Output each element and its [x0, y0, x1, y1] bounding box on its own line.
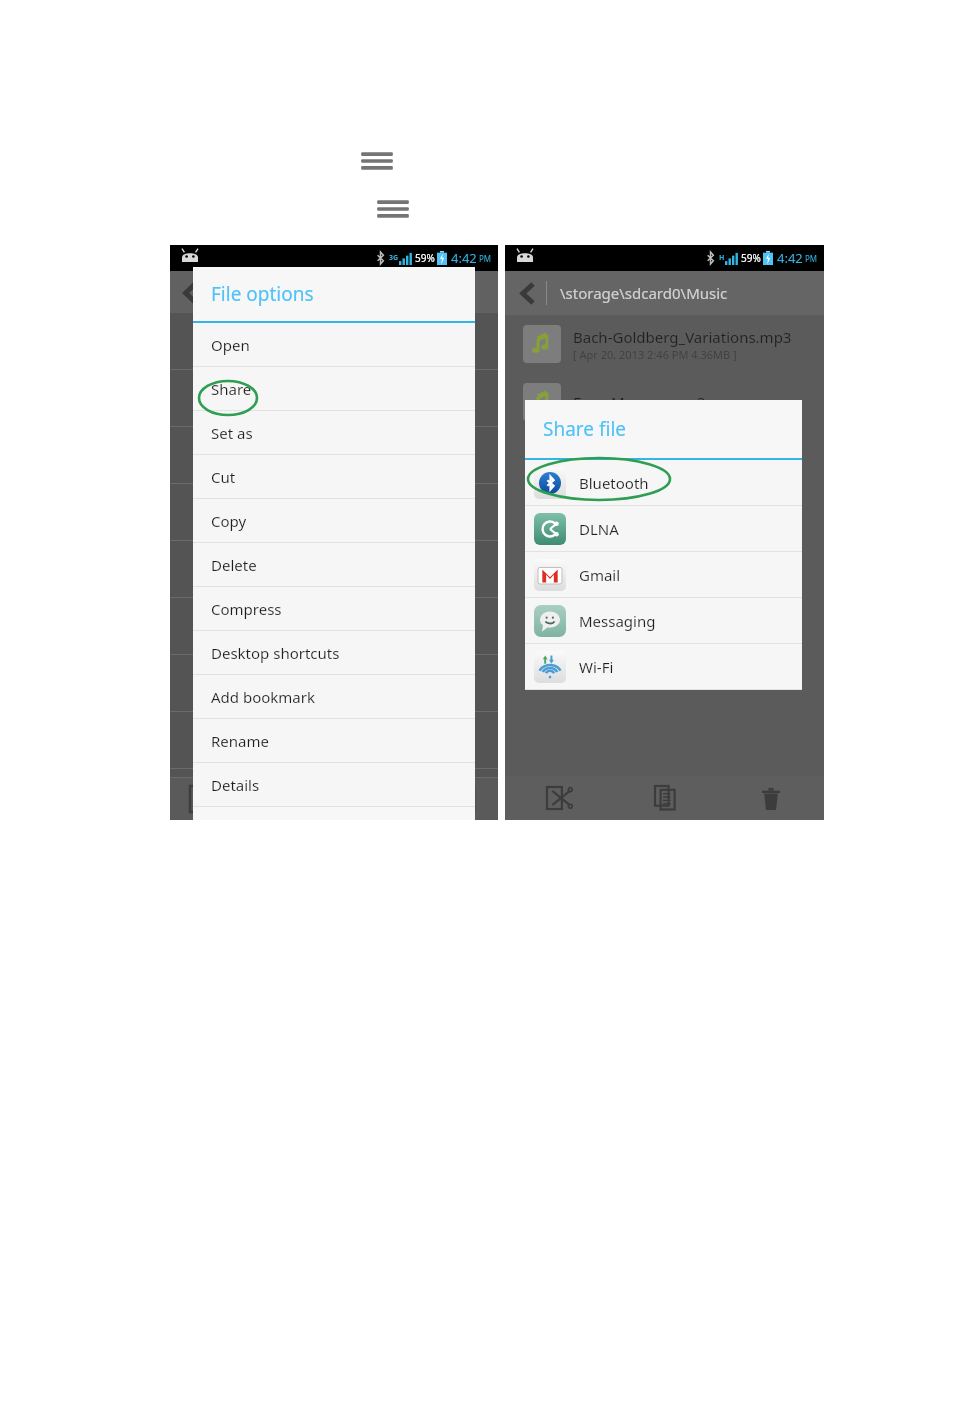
staticText: Bach-Goldberg_Variations.mp3 — [573, 327, 792, 347]
staticText: H — [719, 253, 725, 263]
button[interactable]: Add bookmark — [193, 675, 475, 719]
staticText: Gmail — [579, 565, 621, 585]
staticText: Cut — [211, 467, 236, 487]
button[interactable]: Messaging — [525, 598, 802, 644]
button[interactable]: Rename — [193, 719, 475, 763]
staticText: File options — [211, 281, 314, 307]
staticText: 4:42 — [451, 249, 477, 267]
staticText: Share — [211, 379, 252, 399]
button[interactable]: Delete — [193, 543, 475, 587]
button[interactable]: Wi-Fi — [525, 644, 802, 690]
staticText: Desktop shortcuts — [211, 643, 340, 663]
button[interactable]: Cut — [505, 776, 612, 820]
staticText: Add bookmark — [211, 687, 315, 707]
button[interactable]: Bach-Goldberg_Variations.mp3 — [505, 315, 824, 373]
button[interactable]: Set as — [193, 411, 475, 455]
button[interactable]: Open — [193, 323, 475, 367]
staticText: Copy — [211, 511, 247, 531]
button[interactable]: Desktop shortcuts — [193, 631, 475, 675]
staticText: Set as — [211, 423, 253, 443]
staticText: Bluetooth — [579, 473, 649, 493]
staticText: Rename — [211, 731, 269, 751]
staticText: \storage\sdcard0\Music — [560, 283, 728, 303]
button[interactable]: Compress — [193, 587, 475, 631]
staticText: Wi-Fi — [579, 657, 614, 677]
button[interactable]: Delete — [718, 776, 824, 820]
staticText: Open — [211, 335, 250, 355]
staticText: DLNA — [579, 519, 619, 539]
staticText: PM — [479, 253, 492, 264]
button[interactable]: Copy — [612, 776, 718, 820]
staticText: 59% — [415, 251, 435, 265]
other: Back — [521, 284, 536, 303]
staticText: Emo_Mamma.mp3 — [573, 392, 706, 412]
button[interactable]: Copy — [193, 499, 475, 543]
staticText: 59% — [741, 251, 761, 265]
staticText: Compress — [211, 599, 282, 619]
staticText: Details — [211, 775, 260, 795]
button[interactable]: Details — [193, 763, 475, 807]
staticText: PM — [805, 253, 818, 264]
button[interactable]: Gmail — [525, 552, 802, 598]
staticText: 4:42 — [777, 249, 803, 267]
staticText: [ Apr 20, 2013 2:46 PM 4.36MB ] — [573, 347, 737, 362]
button[interactable]: Share — [193, 367, 475, 411]
button[interactable]: Cut — [193, 455, 475, 499]
staticText: Delete — [211, 555, 257, 575]
staticText: Messaging — [579, 611, 656, 631]
staticText: 3G — [389, 253, 399, 263]
button[interactable]: Bluetooth — [525, 460, 802, 506]
button[interactable]: DLNA — [525, 506, 802, 552]
button[interactable]: Emo_Mamma.mp3 — [505, 373, 824, 431]
staticText: Share file — [543, 416, 627, 442]
